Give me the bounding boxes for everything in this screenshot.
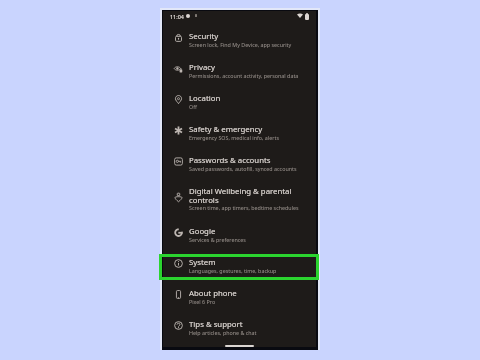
button[interactable]: Tips & support <box>163 318 316 349</box>
staticText: Permissions, account activity, personal … <box>189 73 299 80</box>
button[interactable]: Digital Wellbeing & parental <box>163 185 316 225</box>
button[interactable]: About phone <box>163 287 316 318</box>
staticText: Privacy <box>189 61 216 73</box>
button[interactable]: Passwords & accounts <box>163 154 316 185</box>
staticText: Passwords & accounts <box>189 154 271 166</box>
staticText: Emergency SOS, medical info, alerts <box>189 135 279 142</box>
staticText: Location <box>189 92 221 104</box>
staticText: Security <box>189 30 219 42</box>
staticText: Screen lock, Find My Device, app securit… <box>189 42 292 49</box>
button[interactable]: Privacy <box>163 61 316 92</box>
staticText: 11:04 <box>170 13 184 20</box>
staticText: Off <box>189 104 197 111</box>
staticText: System <box>189 256 216 268</box>
button[interactable]: System <box>163 256 316 287</box>
button[interactable]: Google <box>163 225 316 256</box>
staticText: Services & preferences <box>189 237 246 244</box>
staticText: Digital Wellbeing & parental <box>189 185 292 197</box>
staticText: Languages, gestures, time, backup <box>189 268 277 275</box>
staticText: Help articles, phone & chat <box>189 330 257 337</box>
staticText: Screen time, app timers, bedtime schedul… <box>189 205 299 212</box>
button[interactable]: Location <box>163 92 316 123</box>
staticText: Tips & support <box>189 318 243 330</box>
staticText: About phone <box>189 287 237 299</box>
button[interactable]: Safety & emergency <box>163 123 316 154</box>
button[interactable]: Security <box>163 30 316 61</box>
staticText: Google <box>189 225 216 237</box>
staticText: controls <box>189 197 219 205</box>
staticText: Saved passwords, autofill, synced accoun… <box>189 166 297 173</box>
staticText: Pixel 6 Pro <box>189 299 216 306</box>
staticText: Safety & emergency <box>189 123 263 135</box>
